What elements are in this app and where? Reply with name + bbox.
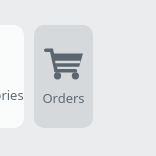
staticText: Orders [42,89,85,107]
button[interactable]: Categories [0,25,24,128]
other: Orders [45,47,83,79]
staticText: Categories [0,86,24,104]
button[interactable]: Orders [34,25,93,128]
